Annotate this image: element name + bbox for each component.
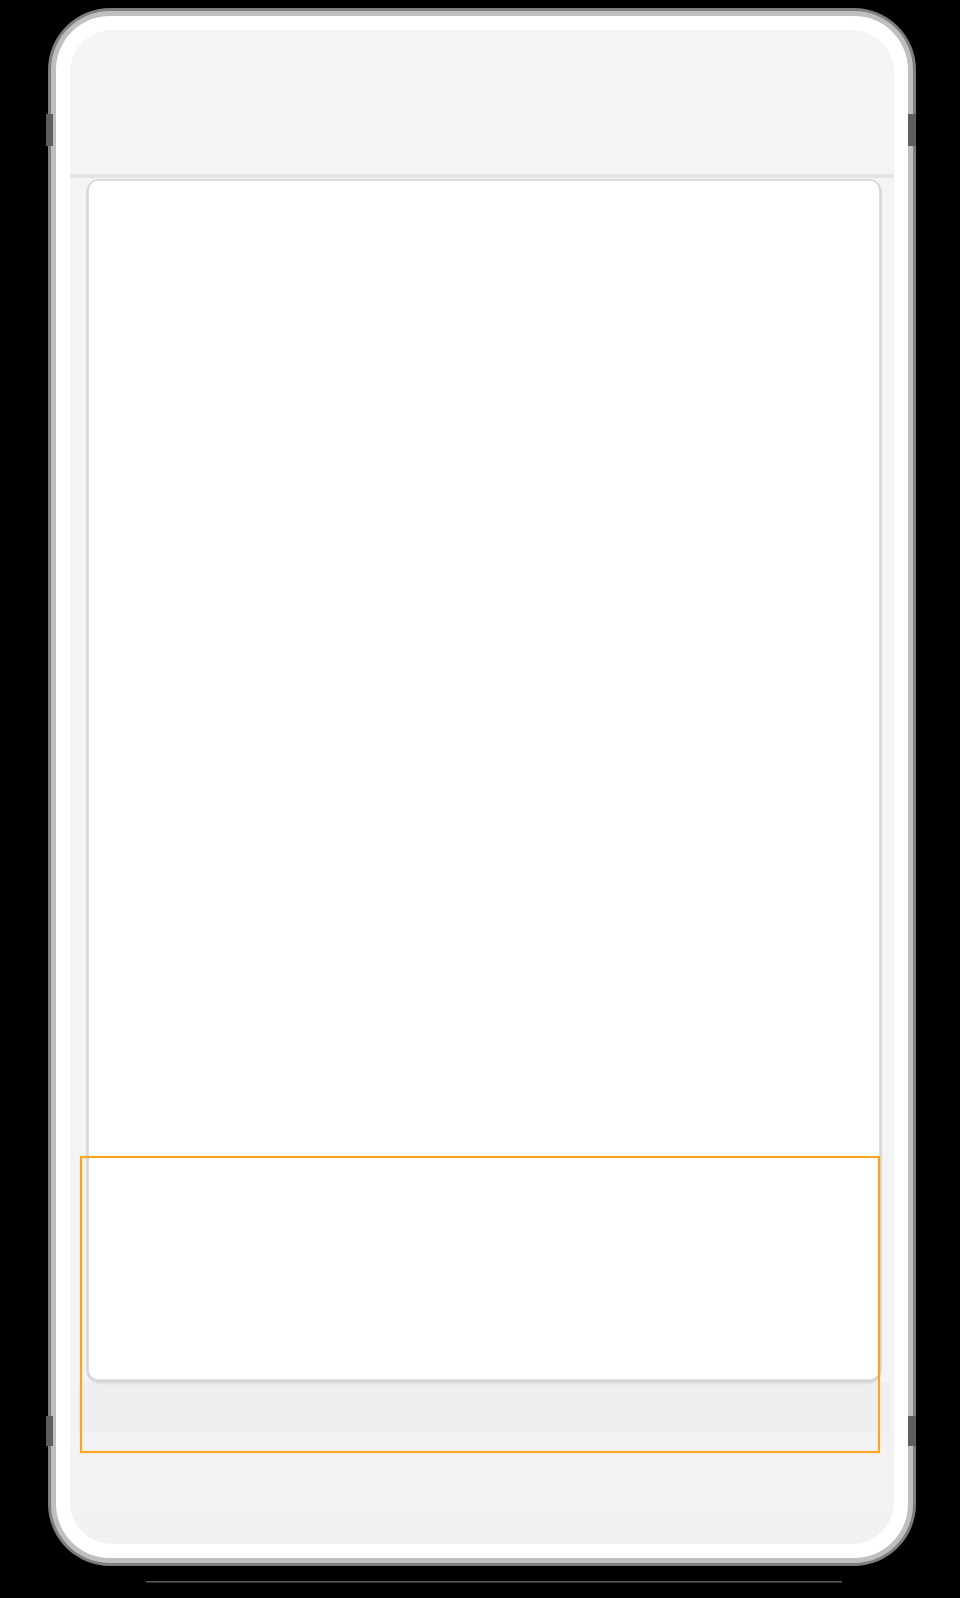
button[interactable]: Device preview frame (0, 0, 960, 1598)
